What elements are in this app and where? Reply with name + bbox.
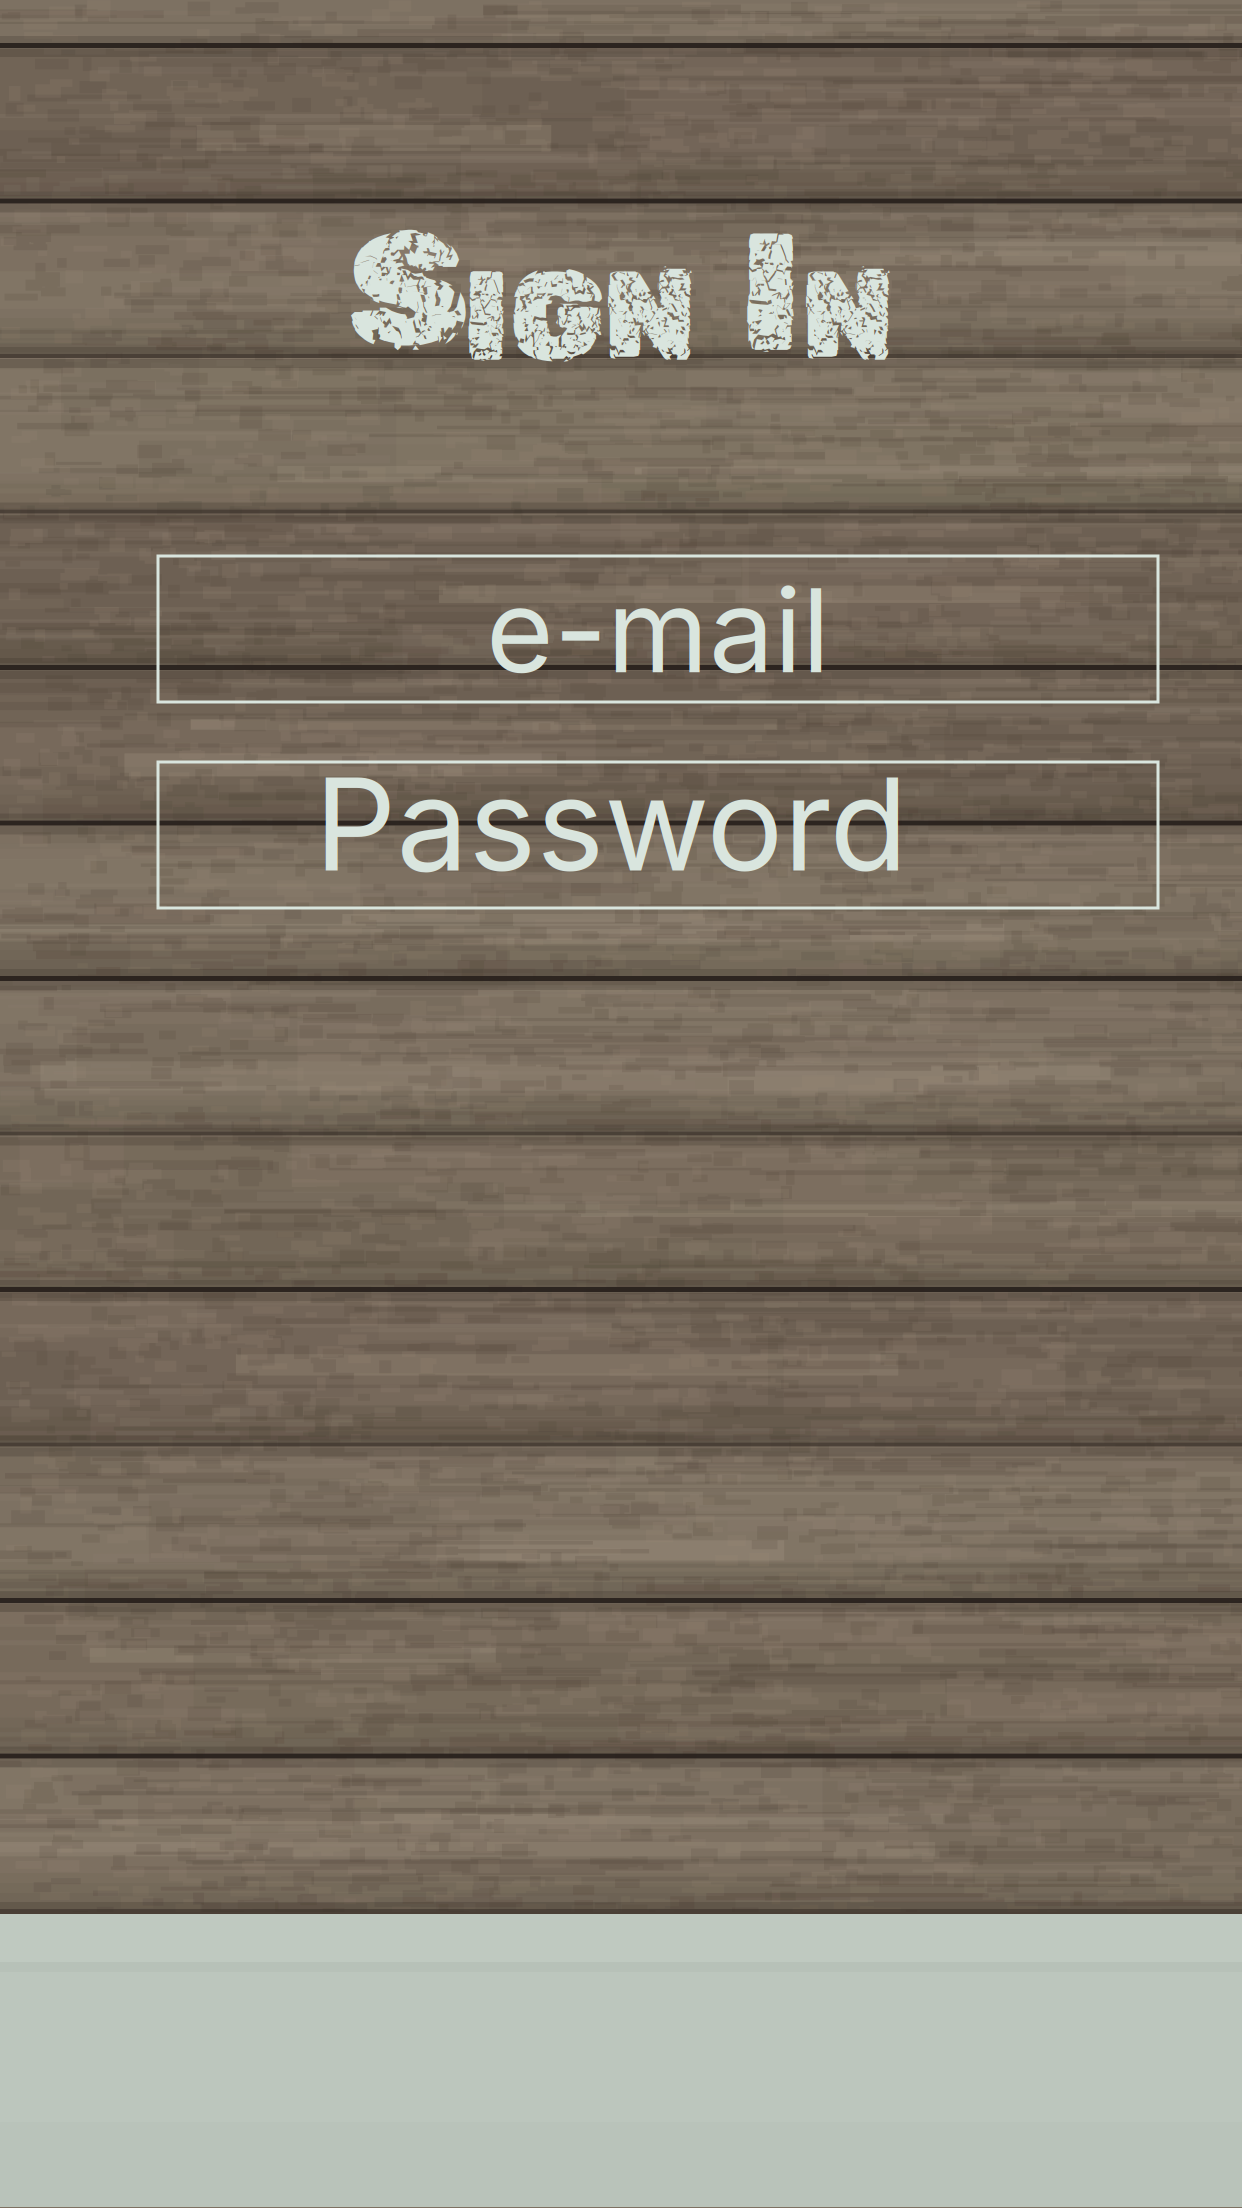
staticText: Password	[314, 747, 907, 901]
staticText: e-mail	[486, 560, 830, 700]
staticText: IGN	[463, 242, 696, 391]
button[interactable]: Password	[158, 762, 1158, 908]
staticText: N	[801, 242, 894, 391]
staticText: I	[740, 195, 801, 391]
staticText: S	[348, 195, 463, 391]
button[interactable]: e-mail	[158, 556, 1158, 702]
